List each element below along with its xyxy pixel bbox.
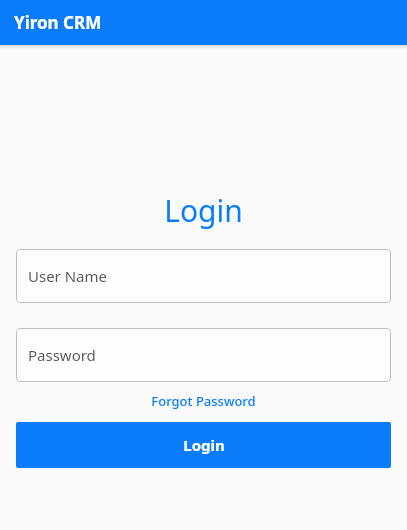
button[interactable]: Forgot Password bbox=[16, 390, 391, 412]
button[interactable]: User Name bbox=[16, 249, 391, 303]
staticText: Login bbox=[183, 435, 225, 455]
button[interactable]: Login bbox=[16, 422, 391, 468]
staticText: Yiron CRM bbox=[14, 11, 102, 34]
staticText: Login bbox=[0, 190, 407, 231]
staticText: User Name bbox=[28, 266, 108, 286]
staticText: Password bbox=[28, 345, 96, 365]
staticText: Forgot Password bbox=[151, 392, 256, 410]
button[interactable]: Password bbox=[16, 328, 391, 382]
